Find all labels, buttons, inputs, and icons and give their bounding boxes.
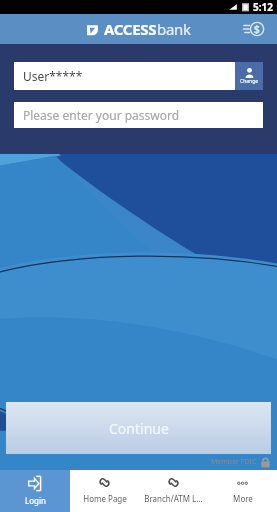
staticText: More — [233, 493, 253, 504]
button[interactable]: Branch/ATM L... — [139, 470, 208, 512]
staticText: Login — [25, 495, 46, 506]
button[interactable]: Continue — [6, 402, 271, 454]
button[interactable]: Quick balance — [243, 18, 265, 40]
staticText: Continue — [109, 419, 169, 438]
staticText: Member FDIC — [211, 457, 257, 467]
staticText: Change — [240, 78, 259, 85]
staticText: 5:12 — [253, 0, 273, 14]
button[interactable]: Login — [0, 470, 70, 512]
button[interactable]: Change — [235, 62, 263, 90]
staticText: Please enter your password — [23, 107, 180, 123]
staticText: User***** — [23, 68, 83, 84]
staticText: Home Page — [83, 493, 127, 504]
staticText: bank — [157, 19, 191, 39]
button[interactable]: Please enter your password — [14, 102, 263, 128]
staticText: Branch/ATM L... — [144, 493, 203, 504]
staticText: $ — [254, 22, 260, 36]
button[interactable]: More — [208, 470, 277, 512]
button[interactable]: User***** — [14, 62, 263, 90]
button[interactable]: Home Page — [70, 470, 139, 512]
staticText: ACCESS — [104, 19, 157, 39]
